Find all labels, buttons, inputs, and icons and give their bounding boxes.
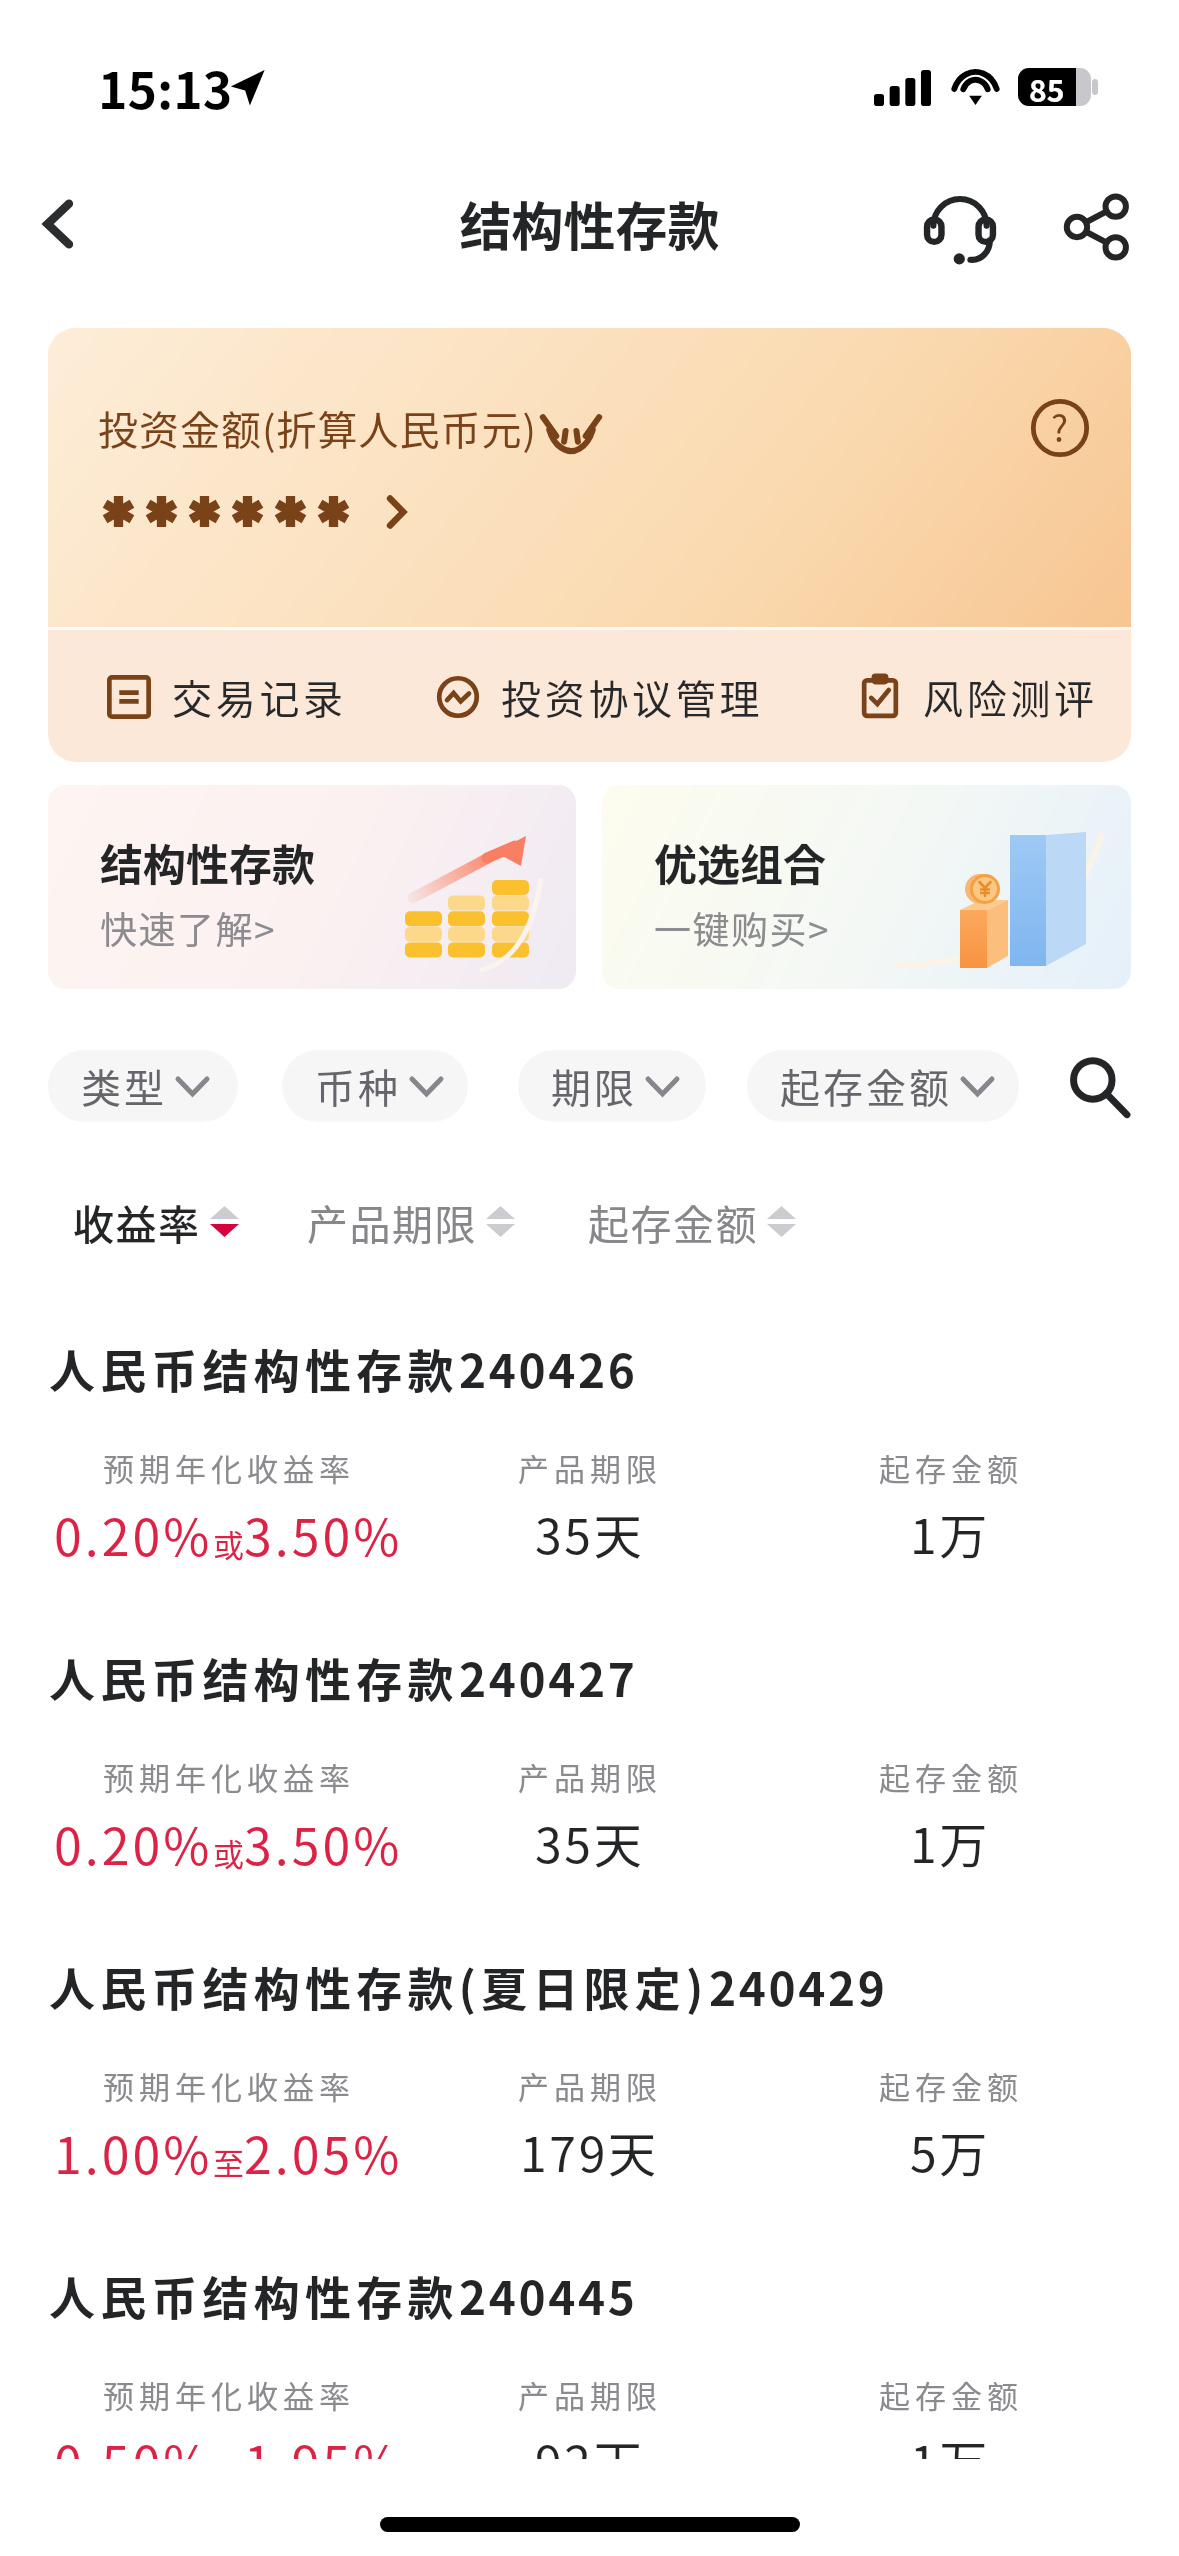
staticText: 1万 bbox=[910, 1807, 991, 1877]
staticText: 一键购买> bbox=[654, 901, 831, 955]
staticText: 3.50% bbox=[244, 1807, 403, 1879]
staticText: 2.05% bbox=[244, 2116, 403, 2188]
staticText: 人民币结构性存款 bbox=[49, 2262, 459, 2329]
button[interactable]: 类型 bbox=[48, 1050, 238, 1122]
staticText: 优选组合 bbox=[654, 831, 826, 893]
staticText: 结构性存款 bbox=[0, 186, 1179, 261]
staticText: 0.20% bbox=[54, 1498, 213, 1570]
staticText: 结构性存款 bbox=[100, 831, 315, 893]
button[interactable]: 起存金额 bbox=[588, 1192, 796, 1251]
staticText: 0.50% bbox=[54, 2425, 213, 2497]
button[interactable]: 人民币结构性存款 bbox=[48, 1335, 1131, 1575]
staticText: 240445 bbox=[459, 2262, 638, 2329]
button[interactable]: Customer service bbox=[920, 192, 1000, 268]
button[interactable]: Share bbox=[1056, 187, 1136, 267]
staticText: 人民币结构性存款 bbox=[49, 1644, 459, 1711]
staticText: 起存金额 bbox=[879, 1445, 1023, 1490]
staticText: 0.20% bbox=[54, 1807, 213, 1879]
staticText: 92天 bbox=[535, 2425, 645, 2495]
staticText: ? bbox=[1051, 400, 1069, 452]
staticText: 币种 bbox=[315, 1057, 401, 1115]
staticText: 1万 bbox=[910, 2425, 991, 2495]
button[interactable]: 产品期限 bbox=[307, 1192, 515, 1251]
staticText: 起存金额 bbox=[879, 2063, 1023, 2108]
staticText: 投资协议管理 bbox=[501, 668, 764, 726]
staticText: 产品期限 bbox=[307, 1192, 477, 1251]
staticText: 产品期限 bbox=[518, 2372, 662, 2417]
staticText: 投资金额(折算人民币元) bbox=[98, 399, 538, 457]
staticText: 1.00% bbox=[54, 2116, 213, 2188]
staticText: 风险测评 bbox=[923, 668, 1098, 726]
staticText: 人民币结构性存款 bbox=[49, 1335, 459, 1402]
button[interactable]: 期限 bbox=[518, 1050, 706, 1122]
staticText: 预期年化收益率 bbox=[103, 2063, 355, 2108]
staticText: 1.95% bbox=[244, 2425, 403, 2497]
staticText: 人民币结构性存款(夏日限定) bbox=[49, 1953, 709, 2020]
button[interactable]: Back bbox=[20, 186, 96, 262]
button[interactable]: 人民币结构性存款 bbox=[48, 1644, 1131, 1884]
staticText: 15:13 bbox=[98, 51, 233, 123]
staticText: 35天 bbox=[535, 1498, 645, 1568]
staticText: 1万 bbox=[910, 1498, 991, 1568]
button[interactable]: 投资协议管理 bbox=[436, 668, 764, 726]
button[interactable]: Search bbox=[1064, 1053, 1134, 1123]
button[interactable]: 优选组合 bbox=[602, 785, 1131, 989]
button[interactable]: Help bbox=[1031, 399, 1089, 457]
staticText: 240429 bbox=[709, 1953, 888, 2020]
staticText: 起存金额 bbox=[879, 1754, 1023, 1799]
staticText: 3.50% bbox=[244, 1498, 403, 1570]
staticText: 35天 bbox=[535, 1807, 645, 1877]
staticText: 240427 bbox=[459, 1644, 638, 1711]
staticText: 240426 bbox=[459, 1335, 638, 1402]
staticText: 预期年化收益率 bbox=[103, 1445, 355, 1490]
staticText: 期限 bbox=[551, 1057, 637, 1115]
button[interactable]: 收益率 bbox=[73, 1192, 239, 1251]
staticText: 起存金额 bbox=[879, 2372, 1023, 2417]
staticText: 快速了解> bbox=[100, 901, 277, 955]
button[interactable]: 人民币结构性存款(夏日限定) bbox=[48, 1953, 1131, 2193]
staticText: 或 bbox=[213, 1521, 244, 1566]
staticText: 或 bbox=[213, 1830, 244, 1875]
staticText: 交易记录 bbox=[172, 668, 347, 726]
staticText: 至 bbox=[213, 2139, 244, 2184]
staticText: 收益率 bbox=[73, 1192, 201, 1251]
button[interactable]: 交易记录 bbox=[107, 668, 347, 726]
staticText: 起存金额 bbox=[780, 1057, 952, 1115]
button[interactable]: 起存金额 bbox=[747, 1050, 1019, 1122]
staticText: 5万 bbox=[910, 2116, 991, 2186]
staticText: 预期年化收益率 bbox=[103, 2372, 355, 2417]
staticText: 179天 bbox=[520, 2116, 659, 2186]
button[interactable]: 币种 bbox=[282, 1050, 468, 1122]
staticText: 产品期限 bbox=[518, 2063, 662, 2108]
staticText: 85 bbox=[1029, 68, 1065, 105]
staticText: 预期年化收益率 bbox=[103, 1754, 355, 1799]
staticText: 产品期限 bbox=[518, 1754, 662, 1799]
staticText: 起存金额 bbox=[588, 1192, 758, 1251]
button[interactable]: 风险测评 bbox=[858, 668, 1098, 726]
staticText: 类型 bbox=[81, 1057, 167, 1115]
staticText: 产品期限 bbox=[518, 1445, 662, 1490]
button[interactable]: 结构性存款 bbox=[48, 785, 576, 989]
button[interactable]: 人民币结构性存款 bbox=[48, 2262, 1131, 2502]
